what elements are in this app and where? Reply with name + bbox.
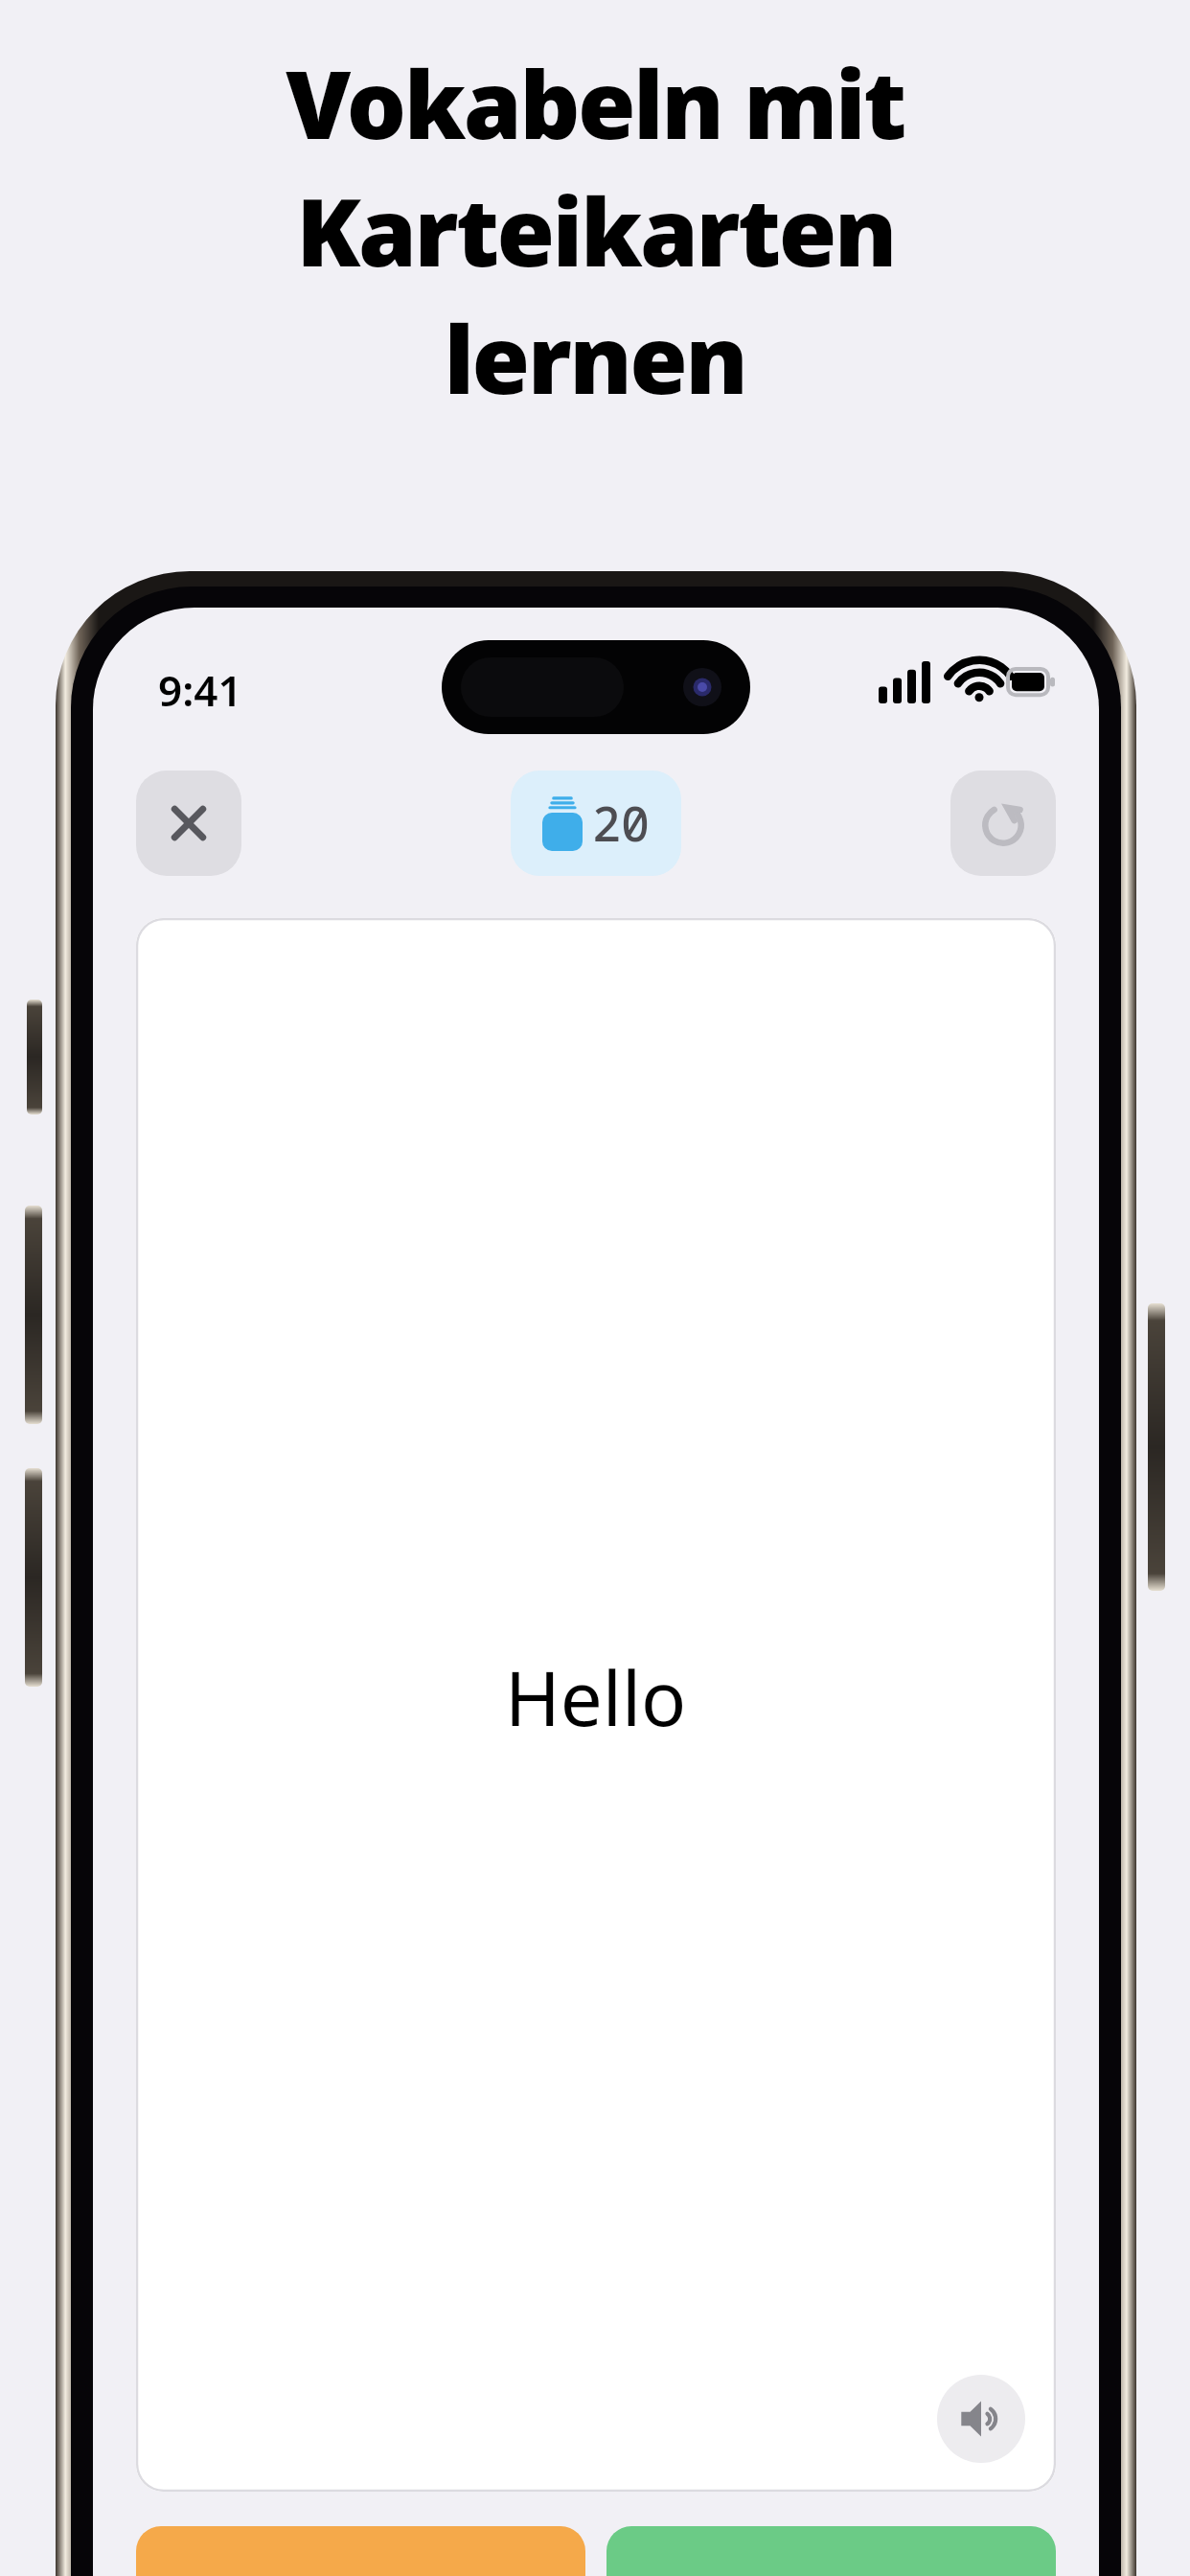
button[interactable]: Schließen xyxy=(136,770,241,876)
button[interactable]: Nochmal xyxy=(136,2526,585,2576)
staticText: 20 xyxy=(592,791,650,856)
staticText: lernen xyxy=(444,293,746,421)
button[interactable]: Hello xyxy=(136,918,1056,2492)
staticText: Hello xyxy=(505,1646,687,1748)
button[interactable]: 20 xyxy=(511,770,681,876)
staticText: Vokabeln mit xyxy=(286,38,904,166)
button[interactable]: Vorlesen xyxy=(937,2375,1025,2463)
staticText: 9:41 xyxy=(158,661,242,719)
button[interactable]: Rückgängig xyxy=(950,770,1056,876)
button[interactable]: Gewusst xyxy=(606,2526,1056,2576)
staticText: Karteikarten xyxy=(296,166,895,293)
